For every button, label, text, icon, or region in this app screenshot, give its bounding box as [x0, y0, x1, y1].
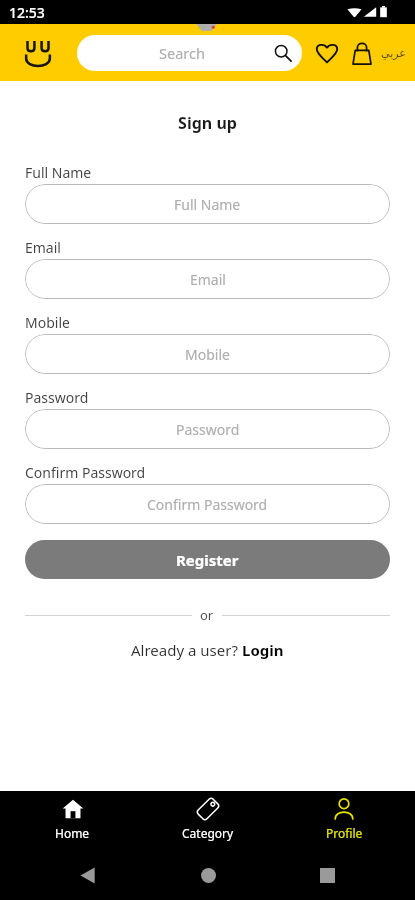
staticText: Already a user?	[131, 640, 242, 660]
staticText: Email	[25, 238, 61, 255]
staticText: Profile	[326, 825, 363, 841]
button[interactable]: Search	[77, 35, 302, 71]
staticText: عربي	[381, 47, 406, 60]
button[interactable]: Category	[139, 791, 277, 851]
staticText: Category	[182, 825, 234, 841]
staticText: Home	[55, 825, 90, 841]
staticText: Confirm Password	[25, 463, 146, 480]
staticText: Sign up	[178, 112, 237, 134]
staticText: Login	[242, 640, 284, 660]
button[interactable]: Profile	[277, 791, 415, 851]
staticText: Full Name	[174, 195, 241, 214]
staticText: Full Name	[25, 163, 92, 180]
button[interactable]: Cart	[349, 40, 375, 66]
button[interactable]: عربي	[381, 47, 406, 60]
button[interactable]: Favourites	[314, 40, 340, 66]
staticText: or	[200, 606, 214, 624]
button[interactable]: Home logo	[21, 36, 55, 70]
button[interactable]: Confirm Password	[25, 484, 390, 524]
button[interactable]: Mobile	[25, 334, 390, 374]
staticText: Confirm Password	[147, 495, 268, 514]
staticText: Register	[176, 550, 239, 570]
button[interactable]: Email	[25, 259, 390, 299]
staticText: Password	[25, 388, 89, 405]
staticText: Search	[159, 43, 205, 63]
staticText: 12:53	[9, 3, 45, 22]
button[interactable]: Login	[242, 640, 284, 660]
button[interactable]: Password	[25, 409, 390, 449]
button[interactable]: Register	[25, 540, 390, 579]
staticText: Mobile	[25, 313, 70, 330]
staticText: Mobile	[185, 345, 230, 364]
button[interactable]: Full Name	[25, 184, 390, 224]
button[interactable]: Home	[0, 791, 139, 851]
staticText: Email	[190, 270, 226, 289]
staticText: Password	[176, 420, 240, 439]
